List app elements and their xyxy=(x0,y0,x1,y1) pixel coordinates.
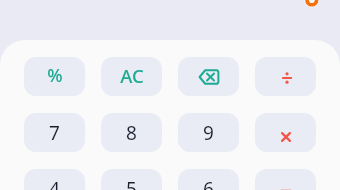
staticText: AC xyxy=(120,63,144,88)
button[interactable]: % xyxy=(24,57,85,96)
button[interactable]: 9 xyxy=(178,113,239,152)
button[interactable]: Divide xyxy=(255,57,316,96)
staticText: 4 xyxy=(49,176,60,190)
button[interactable]: 5 xyxy=(101,169,162,190)
button[interactable]: 4 xyxy=(24,169,85,190)
staticText: % xyxy=(47,63,63,88)
button[interactable]: 6 xyxy=(178,169,239,190)
button[interactable]: Backspace xyxy=(178,57,239,96)
staticText: 7 xyxy=(49,120,60,146)
button[interactable]: Multiply xyxy=(255,113,316,152)
staticText: 6 xyxy=(203,176,214,190)
button[interactable]: 7 xyxy=(24,113,85,152)
staticText: 8 xyxy=(126,120,137,146)
button[interactable]: 8 xyxy=(101,113,162,152)
button[interactable]: Subtract xyxy=(255,169,316,190)
staticText: 9 xyxy=(203,120,214,146)
staticText: 5 xyxy=(126,176,137,190)
button[interactable]: AC xyxy=(101,57,162,96)
